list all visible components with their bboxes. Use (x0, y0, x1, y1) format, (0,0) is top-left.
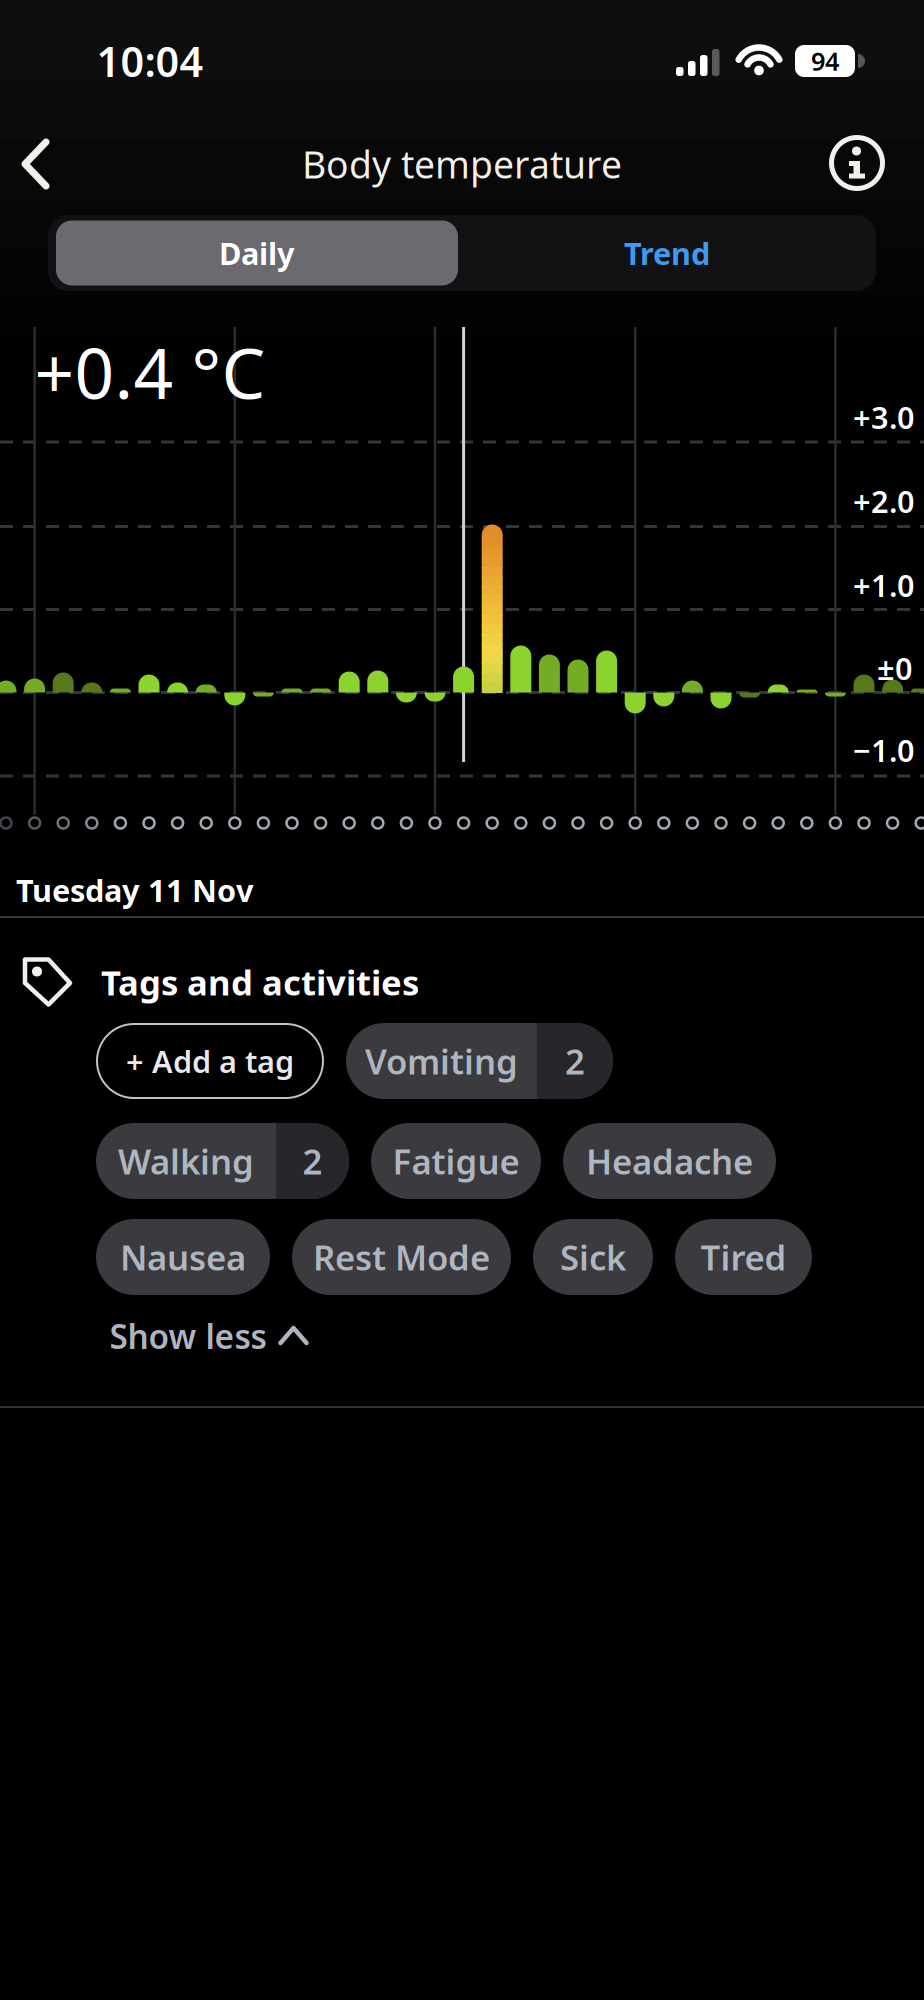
button[interactable]: Rest Mode (292, 1219, 511, 1295)
staticText: 2 (565, 1038, 585, 1084)
button[interactable]: Daily (56, 220, 458, 285)
staticText: + Add a tag (126, 1041, 294, 1081)
staticText: Show less (109, 1314, 266, 1358)
staticText: Headache (586, 1138, 753, 1184)
button[interactable]: Fatigue (371, 1123, 541, 1199)
staticText: Fatigue (392, 1138, 519, 1184)
staticText: +0.4 °C (34, 326, 265, 418)
staticText: 10:04 (96, 34, 203, 88)
staticText: Sick (560, 1234, 626, 1280)
staticText: Vomiting (365, 1038, 518, 1084)
staticText: 2 (302, 1138, 322, 1184)
button[interactable]: Back (10, 134, 70, 194)
staticText: Tags and activities (101, 959, 419, 1005)
staticText: −1.0 (853, 730, 915, 770)
button[interactable]: + Add a tag (96, 1023, 324, 1099)
button[interactable]: Walking (96, 1123, 349, 1199)
staticText: Tired (700, 1234, 786, 1280)
staticText: +3.0 (853, 397, 915, 437)
button[interactable]: Sick (533, 1219, 653, 1295)
button[interactable]: Trend (466, 220, 868, 285)
staticText: Daily (219, 233, 295, 273)
button[interactable]: Headache (563, 1123, 776, 1199)
staticText: Rest Mode (313, 1234, 490, 1280)
button[interactable]: Nausea (96, 1219, 270, 1295)
staticText: Trend (624, 233, 710, 273)
staticText: 94 (811, 44, 839, 78)
button[interactable]: Info (825, 131, 889, 195)
button[interactable]: Vomiting (346, 1023, 613, 1099)
staticText: Tuesday 11 Nov (16, 870, 254, 910)
staticText: Body temperature (302, 139, 622, 189)
button[interactable]: Tired (675, 1219, 812, 1295)
button[interactable]: Show less (109, 1314, 308, 1358)
staticText: +1.0 (853, 565, 915, 605)
staticText: ±0 (877, 648, 913, 688)
staticText: +2.0 (853, 481, 915, 521)
staticText: Nausea (120, 1234, 246, 1280)
staticText: Walking (118, 1138, 254, 1184)
